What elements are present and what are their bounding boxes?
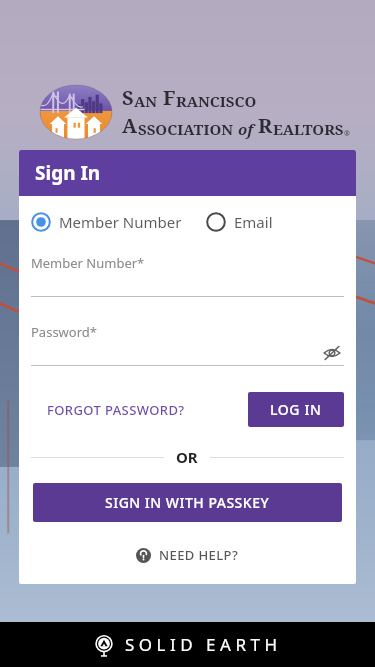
button[interactable]: NEED HELP? <box>130 540 245 570</box>
staticText: S <box>122 84 134 111</box>
staticText: Email <box>234 212 273 232</box>
staticText: NEED HELP? <box>159 546 239 564</box>
button[interactable]: FORGOT PASSWORD? <box>31 395 191 425</box>
staticText: SIGN IN WITH PASSKEY <box>105 493 270 512</box>
button[interactable]: LOG IN <box>248 392 344 427</box>
staticText: LOG IN <box>270 400 322 419</box>
staticText: SSOCIATION <box>138 119 234 139</box>
button[interactable]: Member Number <box>31 212 188 232</box>
button[interactable]: Email <box>206 212 273 232</box>
staticText: EALTORS <box>273 119 344 139</box>
staticText: of <box>238 119 254 139</box>
staticText: RANCISCO <box>176 91 257 111</box>
staticText: Member Number* <box>31 254 145 272</box>
staticText: A <box>122 112 138 139</box>
staticText: Password* <box>31 323 97 341</box>
staticText: AN <box>134 91 158 111</box>
staticText: Sign In <box>35 160 101 186</box>
staticText: SOLID EARTH <box>125 633 282 656</box>
staticText: F <box>163 84 176 111</box>
staticText: FORGOT PASSWORD? <box>47 401 185 419</box>
staticText: ® <box>344 129 350 139</box>
button[interactable]: Password* <box>31 323 344 366</box>
button[interactable]: SIGN IN WITH PASSKEY <box>33 483 342 522</box>
button[interactable]: Member Number* <box>31 254 344 297</box>
staticText: R <box>258 112 273 139</box>
staticText: OR <box>176 447 198 467</box>
staticText: Member Number <box>59 212 182 232</box>
button[interactable]: Show password <box>320 341 344 365</box>
